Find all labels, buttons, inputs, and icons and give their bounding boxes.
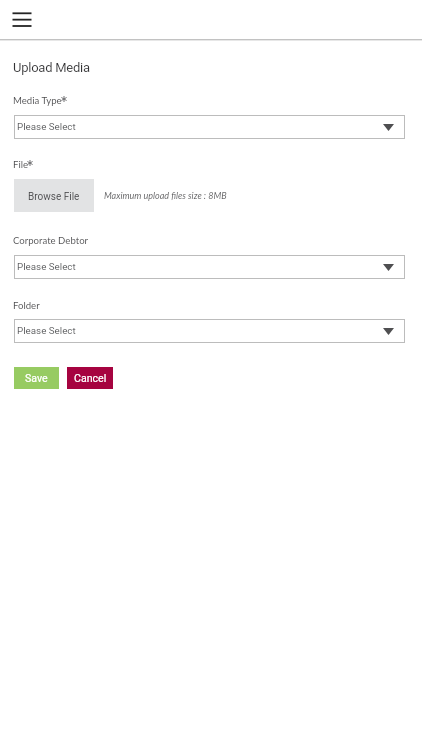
staticText: File xyxy=(13,159,29,171)
staticText: Folder xyxy=(13,300,40,312)
staticText: Corporate Debtor xyxy=(13,235,89,247)
staticText: Browse File xyxy=(28,191,80,203)
button[interactable]: Cancel xyxy=(67,367,113,389)
button[interactable]: Save xyxy=(14,367,59,389)
button[interactable]: Browse File xyxy=(14,179,94,212)
staticText: Maximum upload files size : 8MB xyxy=(104,190,227,201)
button[interactable]: Please Select xyxy=(14,115,405,139)
staticText: Please Select xyxy=(17,325,76,336)
button[interactable]: Please Select xyxy=(14,319,405,343)
staticText: Upload Media xyxy=(13,60,90,75)
staticText: Please Select xyxy=(17,261,76,272)
staticText: Please Select xyxy=(17,121,76,132)
staticText: Save xyxy=(25,372,48,384)
staticText: Cancel xyxy=(74,372,107,384)
button[interactable]: Open navigation menu xyxy=(2,2,42,38)
button[interactable]: Please Select xyxy=(14,255,405,279)
staticText: Media Type xyxy=(13,95,62,107)
